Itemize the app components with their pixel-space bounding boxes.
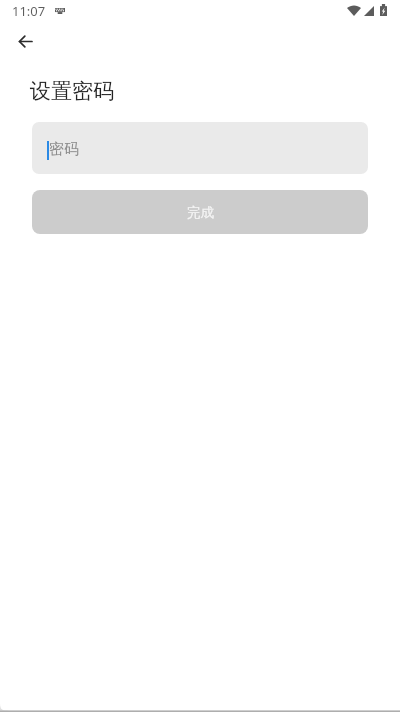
button[interactable]: Back — [13, 29, 37, 53]
button[interactable]: 完成 — [32, 190, 368, 234]
button[interactable]: 密码 — [32, 122, 368, 174]
staticText: 11:07 — [12, 2, 46, 20]
staticText: 完成 — [187, 204, 214, 221]
staticText: 设置密码 — [30, 78, 114, 104]
staticText: 密码 — [49, 140, 79, 159]
